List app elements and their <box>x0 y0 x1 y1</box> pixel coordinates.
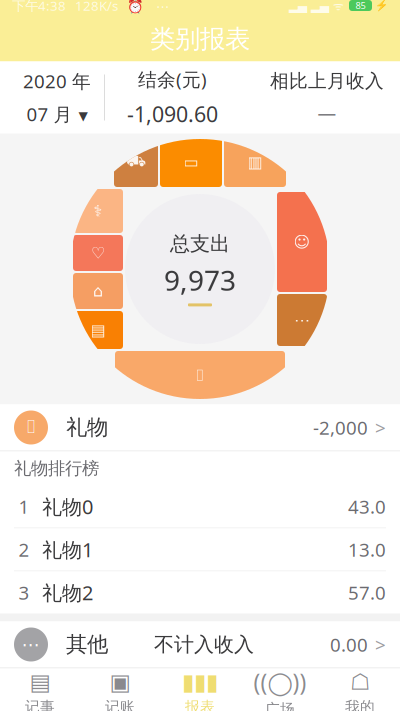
button[interactable]: ▤ <box>0 668 80 711</box>
staticText: ▤ <box>90 321 105 339</box>
staticText: ⌷ <box>25 418 36 437</box>
staticText: ⚕ <box>93 202 102 220</box>
staticText: 结余(元) <box>138 67 207 92</box>
staticText: 总支出 <box>170 232 230 256</box>
button[interactable]: 3 <box>0 571 400 613</box>
staticText: ♡ <box>91 244 105 262</box>
staticText: 我的 <box>345 698 375 711</box>
staticText: 13.0 <box>348 537 386 562</box>
staticText: -2,000 <box>313 415 368 440</box>
staticText: > <box>375 632 386 657</box>
staticText: 85 <box>355 0 365 12</box>
staticText: 43.0 <box>348 494 386 519</box>
button[interactable]: 1 <box>0 485 400 527</box>
staticText: ⋯ <box>21 634 40 655</box>
staticText: 礼物0 <box>42 493 93 520</box>
staticText: 2020 年 <box>23 69 91 93</box>
staticText: — <box>317 101 336 125</box>
button[interactable]: ▣ <box>80 668 160 711</box>
staticText: ⛟ <box>126 154 146 170</box>
button[interactable]: ((◯)) <box>240 668 320 711</box>
staticText: 记事 <box>25 698 55 711</box>
staticText: ⋯ <box>294 311 310 329</box>
button[interactable]: ▮▮▮ <box>160 668 240 711</box>
staticText: 0.00 <box>330 632 368 657</box>
staticText: 9,973 <box>164 261 236 298</box>
staticText: > <box>375 415 386 440</box>
staticText: 记账 <box>105 698 135 711</box>
staticText: 报表 <box>185 698 215 711</box>
staticText: 2 <box>18 537 29 562</box>
button[interactable]: ⌷ <box>0 404 400 450</box>
button[interactable]: 2 <box>0 528 400 570</box>
button[interactable]: ⋯ <box>0 621 400 667</box>
staticText: 07 月 ▾ <box>26 101 87 126</box>
staticText: ▣ <box>109 669 130 695</box>
staticText: ((◯)) <box>253 667 306 697</box>
staticText: ▤ <box>29 669 50 695</box>
staticText: 3 <box>18 580 29 605</box>
staticText: ▂▄ ▂▄ ᯤ <box>289 0 344 13</box>
staticText: ☺ <box>293 233 310 251</box>
button[interactable]: 2020 年 <box>10 67 104 127</box>
staticText: 广场 <box>265 700 295 711</box>
staticText: -1,090.60 <box>127 100 218 128</box>
staticText: ⌷ <box>195 368 205 384</box>
staticText: ⌂ <box>93 282 103 300</box>
staticText: ⚡ <box>375 0 388 12</box>
button[interactable]: ☖ <box>320 668 400 711</box>
staticText: 礼物排行榜 <box>14 458 99 479</box>
staticText: 礼物 <box>66 414 108 441</box>
staticText: ☖ <box>350 669 370 695</box>
staticText: 下午4:38 128K/s ⏰ ⋯ <box>12 0 169 14</box>
staticText: 不计入收入 <box>154 632 254 657</box>
staticText: 礼物2 <box>42 579 93 606</box>
staticText: ▮▮▮ <box>182 669 218 695</box>
staticText: ▭ <box>183 153 198 171</box>
staticText: 其他 <box>66 631 108 658</box>
staticText: 相比上月收入 <box>270 70 384 92</box>
staticText: 1 <box>18 494 29 519</box>
staticText: 类别报表 <box>150 23 250 54</box>
staticText: 57.0 <box>348 580 386 605</box>
staticText: ▥ <box>247 153 262 171</box>
staticText: 礼物1 <box>42 536 93 563</box>
